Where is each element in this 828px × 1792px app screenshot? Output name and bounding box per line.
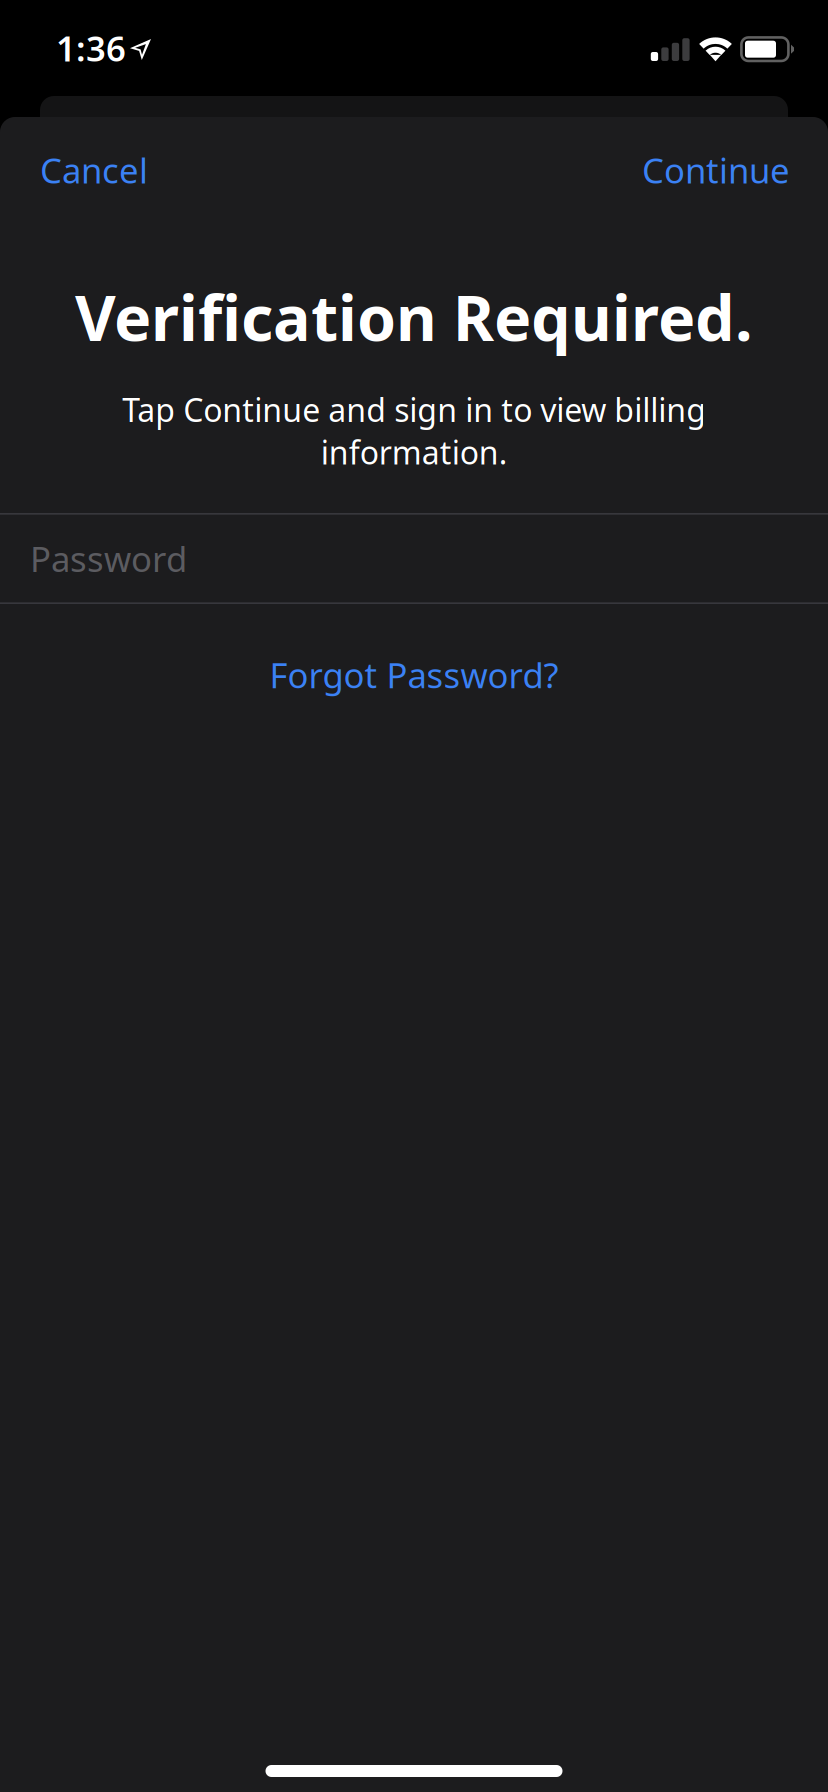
- button[interactable]: Continue: [622, 117, 828, 223]
- button[interactable]: Forgot Password?: [253, 638, 574, 712]
- button[interactable]: Cancel: [0, 117, 168, 223]
- staticText: Verification Required.: [75, 275, 753, 358]
- staticText: Forgot Password?: [269, 652, 558, 698]
- staticText: Cancel: [40, 147, 148, 193]
- staticText: Password: [30, 535, 187, 581]
- staticText: Tap Continue and sign in to view billing…: [122, 388, 706, 473]
- button[interactable]: Password: [0, 514, 828, 602]
- staticText: 1:36: [56, 25, 126, 71]
- staticText: Continue: [642, 147, 790, 193]
